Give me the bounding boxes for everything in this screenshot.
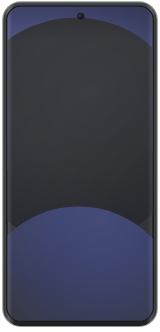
button[interactable]: Smartphone device preview (0, 0, 160, 332)
